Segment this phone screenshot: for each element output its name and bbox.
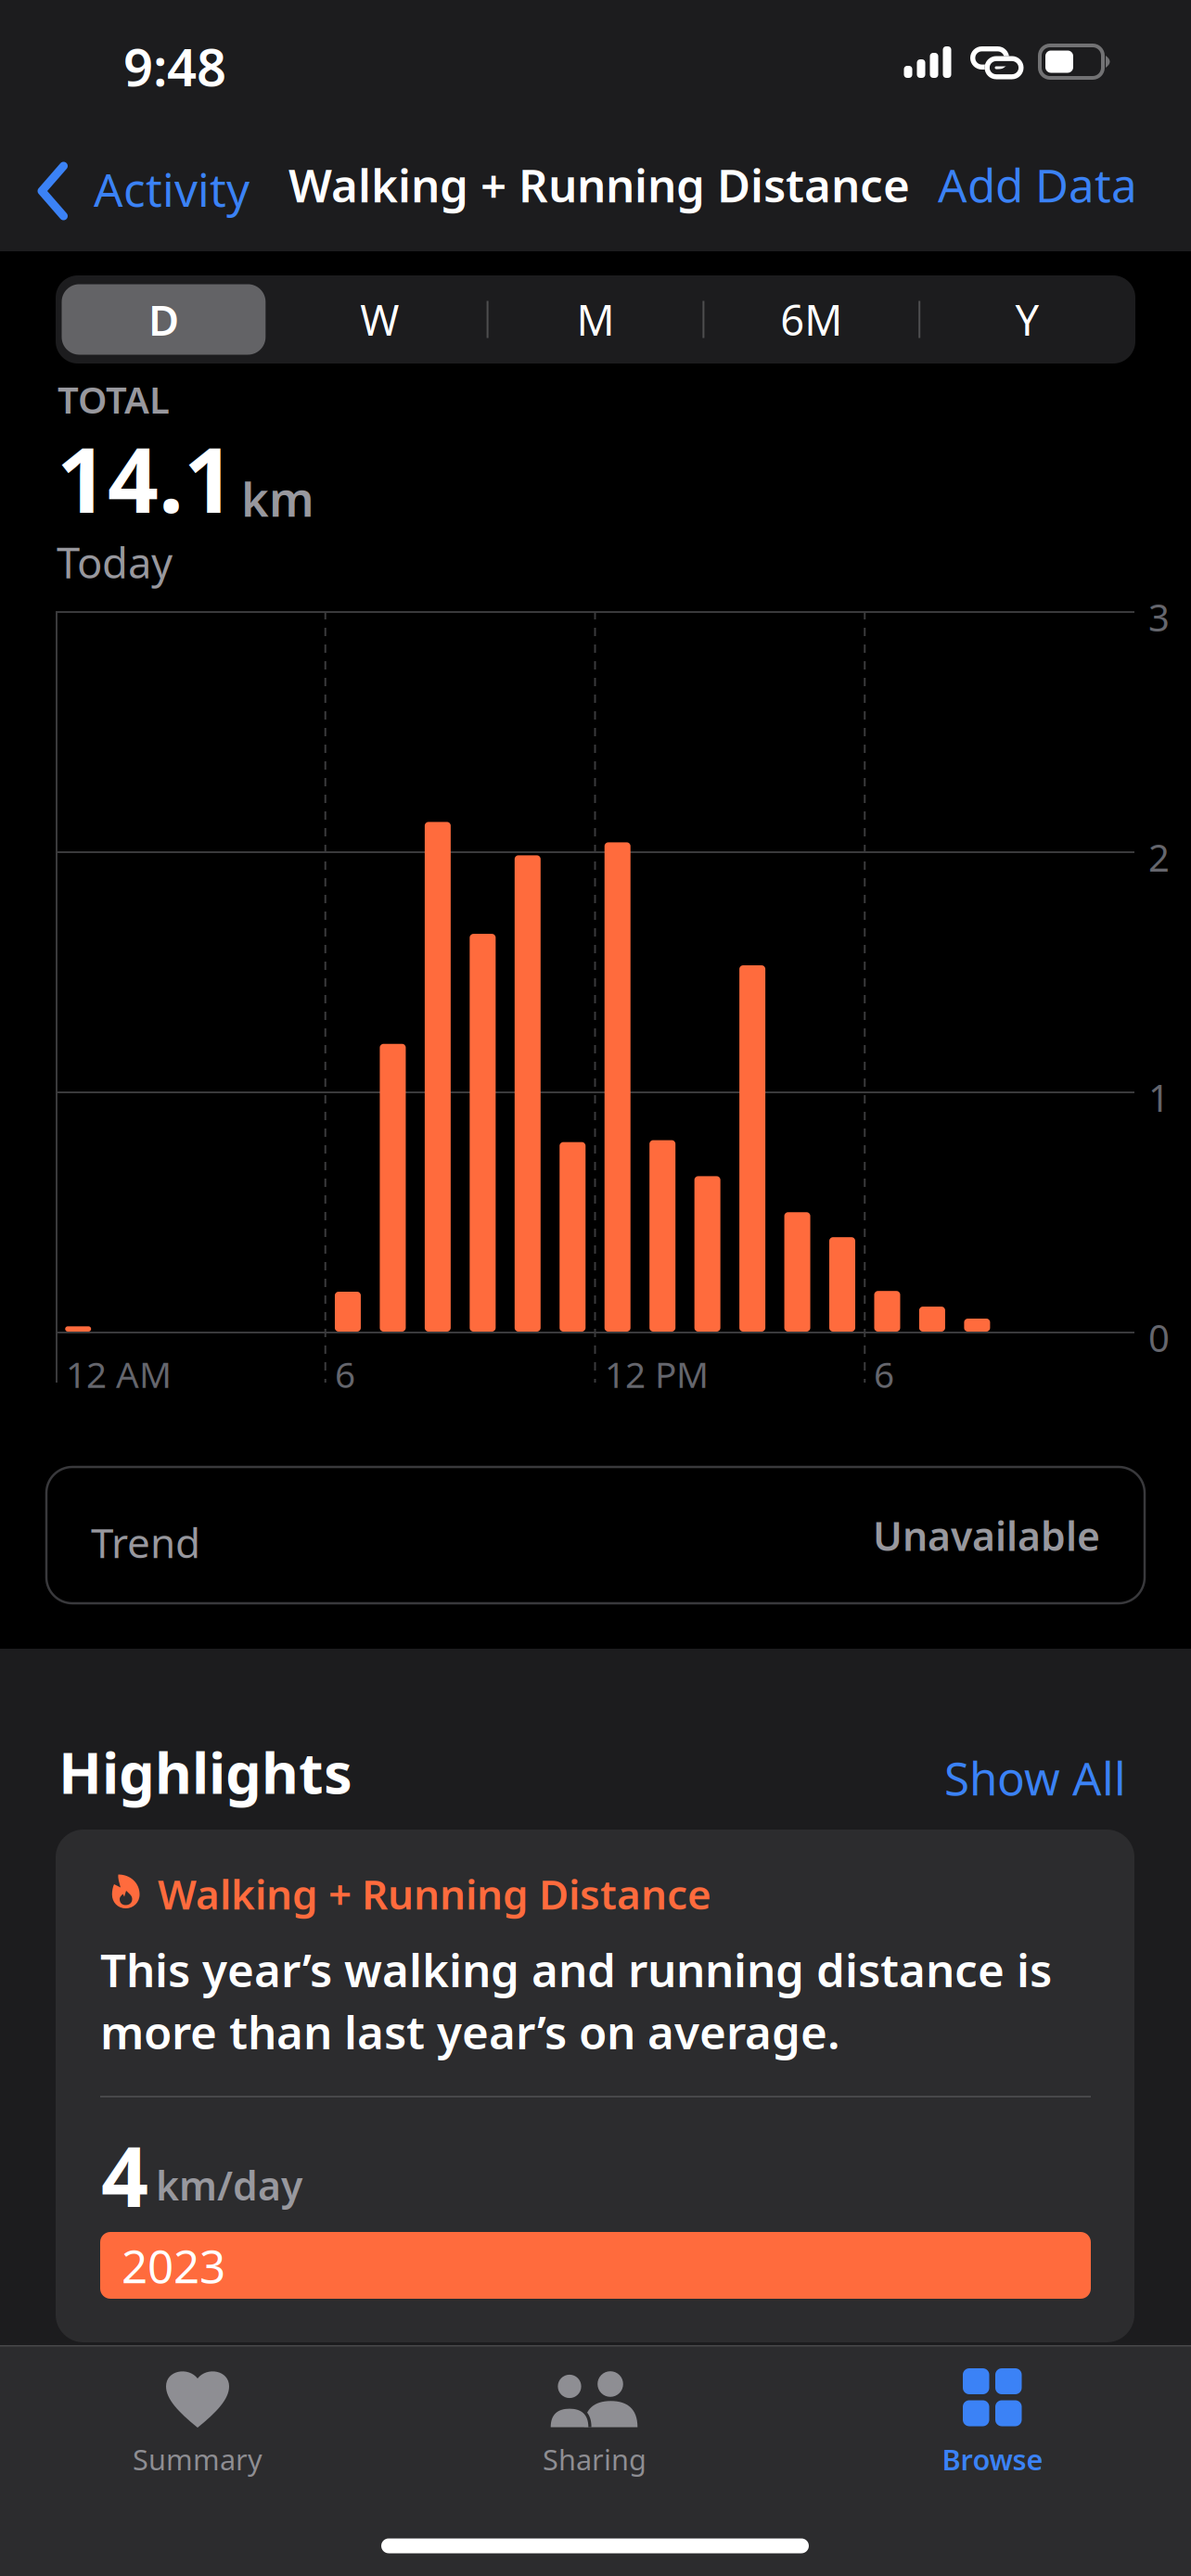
staticText: 1: [1148, 1073, 1170, 1122]
button[interactable]: Show All: [848, 1749, 1126, 1806]
staticText: km/day: [156, 2159, 302, 2211]
staticText: Activity: [94, 159, 250, 219]
staticText: 6: [874, 1350, 894, 1398]
button[interactable]: M: [488, 275, 703, 363]
staticText: 6M: [780, 292, 843, 347]
button[interactable]: Summary: [0, 2345, 396, 2475]
staticText: km: [241, 467, 314, 530]
staticText: Unavailable: [873, 1509, 1100, 1562]
staticText: Highlights: [58, 1734, 352, 1810]
staticText: This year’s walking and running distance…: [100, 1939, 1052, 2000]
staticText: M: [576, 292, 615, 347]
staticText: Walking + Running Distance: [158, 1867, 711, 1921]
staticText: Show All: [944, 1747, 1126, 1808]
button[interactable]: Browse: [794, 2345, 1191, 2475]
button[interactable]: Back to Activity: [0, 143, 249, 232]
staticText: more than last year’s on average.: [100, 2001, 840, 2062]
staticText: W: [360, 292, 399, 347]
staticText: 12 PM: [605, 1350, 709, 1398]
button[interactable]: Y: [919, 275, 1135, 363]
staticText: Browse: [942, 2440, 1043, 2478]
staticText: TOTAL: [58, 375, 170, 424]
button[interactable]: Walking + Running Distance: [56, 1830, 1134, 2342]
staticText: 14.1: [57, 419, 235, 537]
staticText: Y: [1015, 292, 1039, 347]
staticText: 3: [1148, 593, 1170, 642]
button[interactable]: Sharing: [396, 2345, 793, 2475]
staticText: 12 AM: [66, 1350, 172, 1398]
button[interactable]: Add Data: [877, 143, 1137, 226]
staticText: Walking + Running Distance: [288, 154, 910, 215]
staticText: 9:48: [123, 32, 226, 101]
staticText: 0: [1148, 1313, 1170, 1362]
staticText: 6: [335, 1350, 355, 1398]
staticText: Add Data: [938, 154, 1137, 215]
staticText: 2: [1148, 833, 1170, 882]
staticText: Summary: [133, 2440, 263, 2478]
button[interactable]: W: [272, 275, 488, 363]
staticText: 2023: [122, 2235, 225, 2296]
staticText: Trend: [91, 1515, 200, 1569]
staticText: Today: [57, 534, 173, 590]
button[interactable]: 6M: [703, 275, 919, 363]
staticText: 4: [101, 2120, 148, 2230]
button[interactable]: Trend: [46, 1467, 1145, 1603]
staticText: D: [148, 292, 179, 347]
button[interactable]: D: [56, 275, 272, 363]
staticText: Sharing: [543, 2440, 647, 2478]
